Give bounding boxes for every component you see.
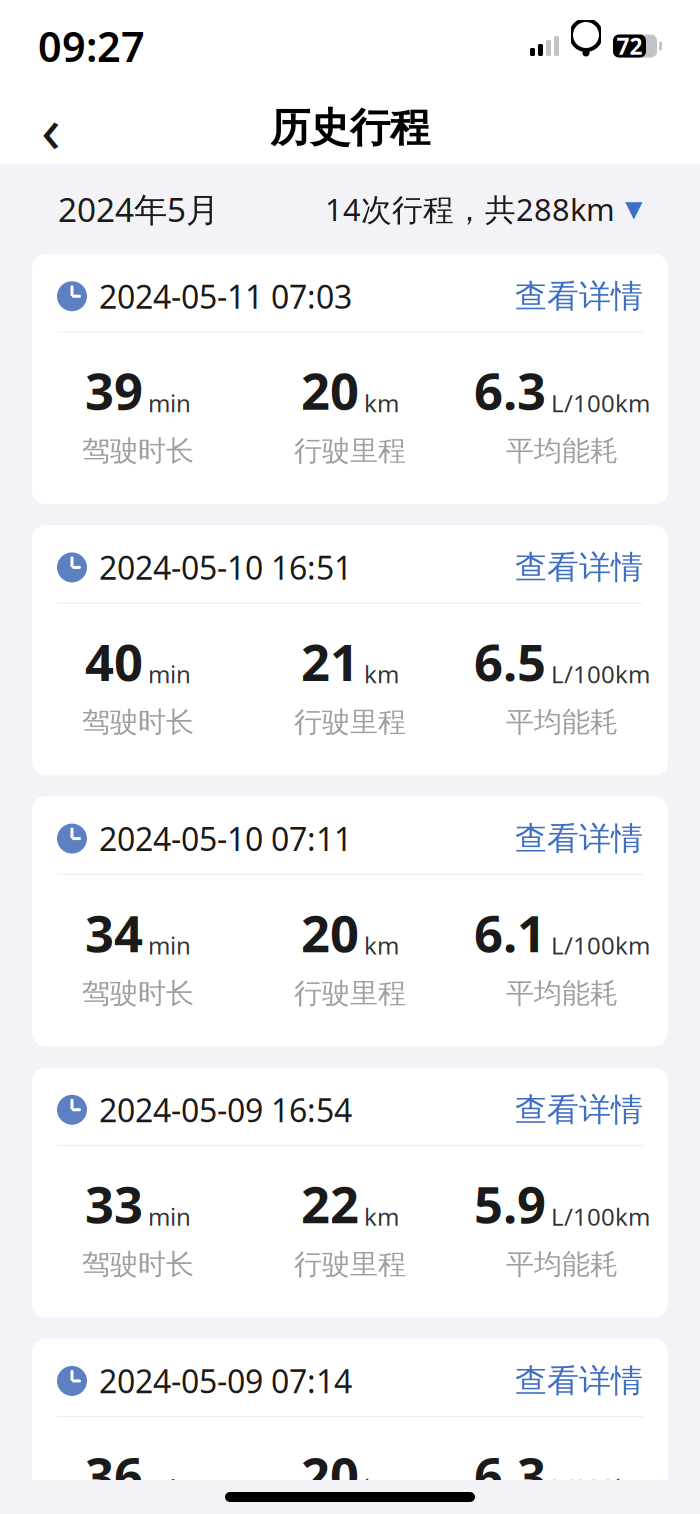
staticText: min — [148, 658, 191, 690]
staticText: 行驶里程 — [294, 1247, 406, 1282]
staticText: 20 — [301, 899, 359, 966]
staticText: 平均能耗 — [506, 705, 618, 739]
staticText: 21 — [301, 628, 359, 695]
staticText: 2024-05-10 07:11 — [99, 817, 352, 860]
staticText: 历史行程 — [270, 103, 430, 152]
staticText: 驾驶时长 — [82, 705, 194, 739]
staticText: 39 — [85, 356, 143, 424]
staticText: 查看详情 — [515, 548, 643, 587]
staticText: 72 — [616, 31, 642, 61]
staticText: 36 — [85, 1441, 143, 1508]
button[interactable]: 2024-05-09 16:54 — [32, 1067, 668, 1318]
staticText: 查看详情 — [515, 277, 643, 316]
staticText: 2024-05-09 07:14 — [99, 1360, 352, 1402]
staticText: 6.3 — [474, 1441, 546, 1508]
button[interactable]: 2024-05-10 16:51 — [32, 525, 668, 775]
staticText: km — [364, 929, 399, 961]
button[interactable]: 2024-05-09 07:14 — [32, 1339, 668, 1514]
staticText: 行驶里程 — [294, 434, 406, 468]
staticText: min — [148, 929, 191, 961]
staticText: 平均能耗 — [506, 976, 618, 1010]
staticText: 6.1 — [474, 899, 546, 966]
staticText: L/100km — [551, 387, 650, 419]
staticText: 20 — [301, 356, 359, 424]
staticText: 2024年5月 — [58, 187, 219, 231]
staticText: 34 — [85, 899, 143, 966]
staticText: 行驶里程 — [294, 705, 406, 739]
staticText: 查看详情 — [515, 1361, 643, 1401]
button[interactable]: 2024-05-10 07:11 — [32, 796, 668, 1046]
staticText: min — [148, 1472, 191, 1503]
staticText: ▼ — [625, 196, 642, 222]
staticText: L/100km — [551, 658, 650, 690]
staticText: 平均能耗 — [506, 434, 618, 468]
staticText: km — [364, 1200, 399, 1232]
staticText: 33 — [85, 1170, 143, 1237]
staticText: 2024-05-11 07:03 — [99, 275, 352, 317]
staticText: L/100km — [551, 929, 650, 961]
staticText: 5.9 — [474, 1170, 546, 1237]
staticText: 6.3 — [474, 356, 546, 424]
staticText: min — [148, 1200, 191, 1232]
staticText: ‹ — [41, 85, 61, 170]
staticText: km — [364, 1472, 399, 1503]
staticText: 6.5 — [474, 628, 546, 695]
staticText: 2024-05-10 16:51 — [99, 546, 352, 589]
staticText: km — [364, 387, 399, 419]
button[interactable]: 返回 — [24, 101, 78, 155]
staticText: 行驶里程 — [294, 976, 406, 1010]
button[interactable]: 14次行程，共288km — [325, 189, 642, 229]
staticText: 查看详情 — [515, 819, 643, 858]
staticText: 20 — [301, 1441, 359, 1508]
staticText: km — [364, 658, 399, 690]
staticText: 驾驶时长 — [82, 1247, 194, 1282]
staticText: 22 — [301, 1170, 359, 1237]
staticText: 09:27 — [38, 19, 145, 73]
staticText: min — [148, 387, 191, 419]
staticText: 40 — [85, 628, 143, 695]
staticText: 驾驶时长 — [82, 976, 194, 1010]
staticText: 2024-05-09 16:54 — [99, 1088, 352, 1131]
button[interactable]: 2024-05-11 07:03 — [32, 254, 668, 504]
staticText: L/100km — [551, 1200, 650, 1232]
staticText: 平均能耗 — [506, 1247, 618, 1282]
staticText: 驾驶时长 — [82, 434, 194, 468]
staticText: L/100km — [551, 1472, 650, 1503]
staticText: 14次行程，共288km — [325, 189, 615, 229]
staticText: 查看详情 — [515, 1090, 643, 1129]
